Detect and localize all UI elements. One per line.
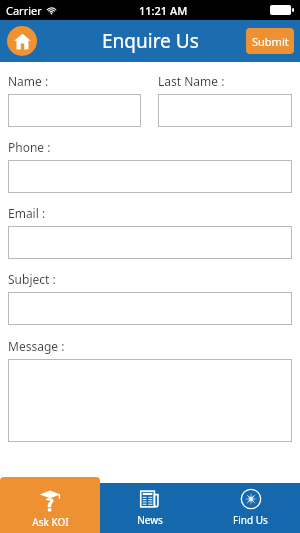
button[interactable]: [8, 160, 292, 193]
staticText: Phone :: [8, 139, 51, 155]
staticText: 11:21 AM: [139, 3, 188, 18]
staticText: Ask KOI: [32, 515, 69, 529]
staticText: Find Us: [233, 513, 268, 527]
staticText: Submit: [252, 34, 289, 49]
staticText: Last Name :: [158, 73, 225, 89]
staticText: Subject :: [8, 271, 56, 287]
button[interactable]: News: [100, 477, 200, 533]
button[interactable]: Submit: [246, 28, 294, 54]
staticText: News: [137, 513, 163, 527]
button[interactable]: [8, 359, 292, 442]
staticText: Carrier: [6, 3, 42, 18]
button[interactable]: Find Us: [200, 477, 300, 533]
staticText: Name :: [8, 73, 49, 89]
staticText: Enquire Us: [102, 28, 199, 54]
button[interactable]: [8, 226, 292, 259]
button[interactable]: Ask KOI: [0, 477, 100, 533]
button[interactable]: [158, 94, 292, 127]
button[interactable]: Home: [7, 26, 37, 56]
staticText: Message :: [8, 338, 65, 354]
button[interactable]: [8, 94, 141, 127]
staticText: Email :: [8, 205, 46, 221]
button[interactable]: [8, 292, 292, 325]
